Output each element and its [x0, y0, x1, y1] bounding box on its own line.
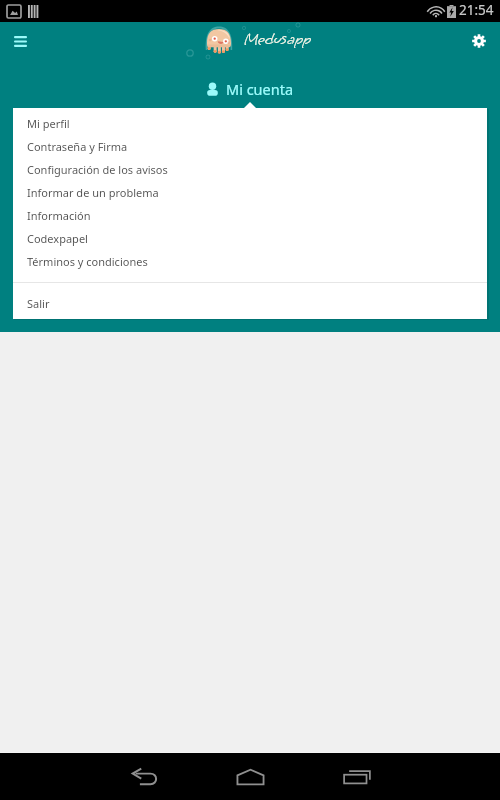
button[interactable]: Información	[13, 204, 487, 227]
staticText: Medusapp	[244, 29, 312, 50]
button[interactable]: Configuración de los avisos	[13, 158, 487, 181]
button[interactable]: Codexpapel	[13, 227, 487, 250]
staticText: Términos y condiciones	[27, 254, 148, 269]
staticText: Información	[27, 208, 91, 223]
staticText: 21:54	[459, 1, 494, 19]
button[interactable]: Recent apps	[329, 753, 385, 800]
button[interactable]: Mi cuenta	[0, 76, 500, 102]
staticText: Codexpapel	[27, 231, 88, 246]
button[interactable]: Home	[222, 753, 278, 800]
staticText: Informar de un problema	[27, 185, 159, 200]
button[interactable]: Salir	[13, 292, 487, 315]
staticText: Contraseña y Firma	[27, 139, 128, 154]
button[interactable]: Términos y condiciones	[13, 250, 487, 273]
button[interactable]: Informar de un problema	[13, 181, 487, 204]
button[interactable]: Settings	[461, 23, 497, 59]
staticText: Mi perfil	[27, 116, 70, 131]
staticText: Configuración de los avisos	[27, 162, 168, 177]
button[interactable]: Mi perfil	[13, 112, 487, 135]
staticText: Mi cuenta	[226, 79, 294, 99]
button[interactable]: Back	[116, 753, 172, 800]
button[interactable]: Open navigation menu	[2, 23, 38, 59]
button[interactable]: Contraseña y Firma	[13, 135, 487, 158]
staticText: Salir	[27, 296, 50, 311]
